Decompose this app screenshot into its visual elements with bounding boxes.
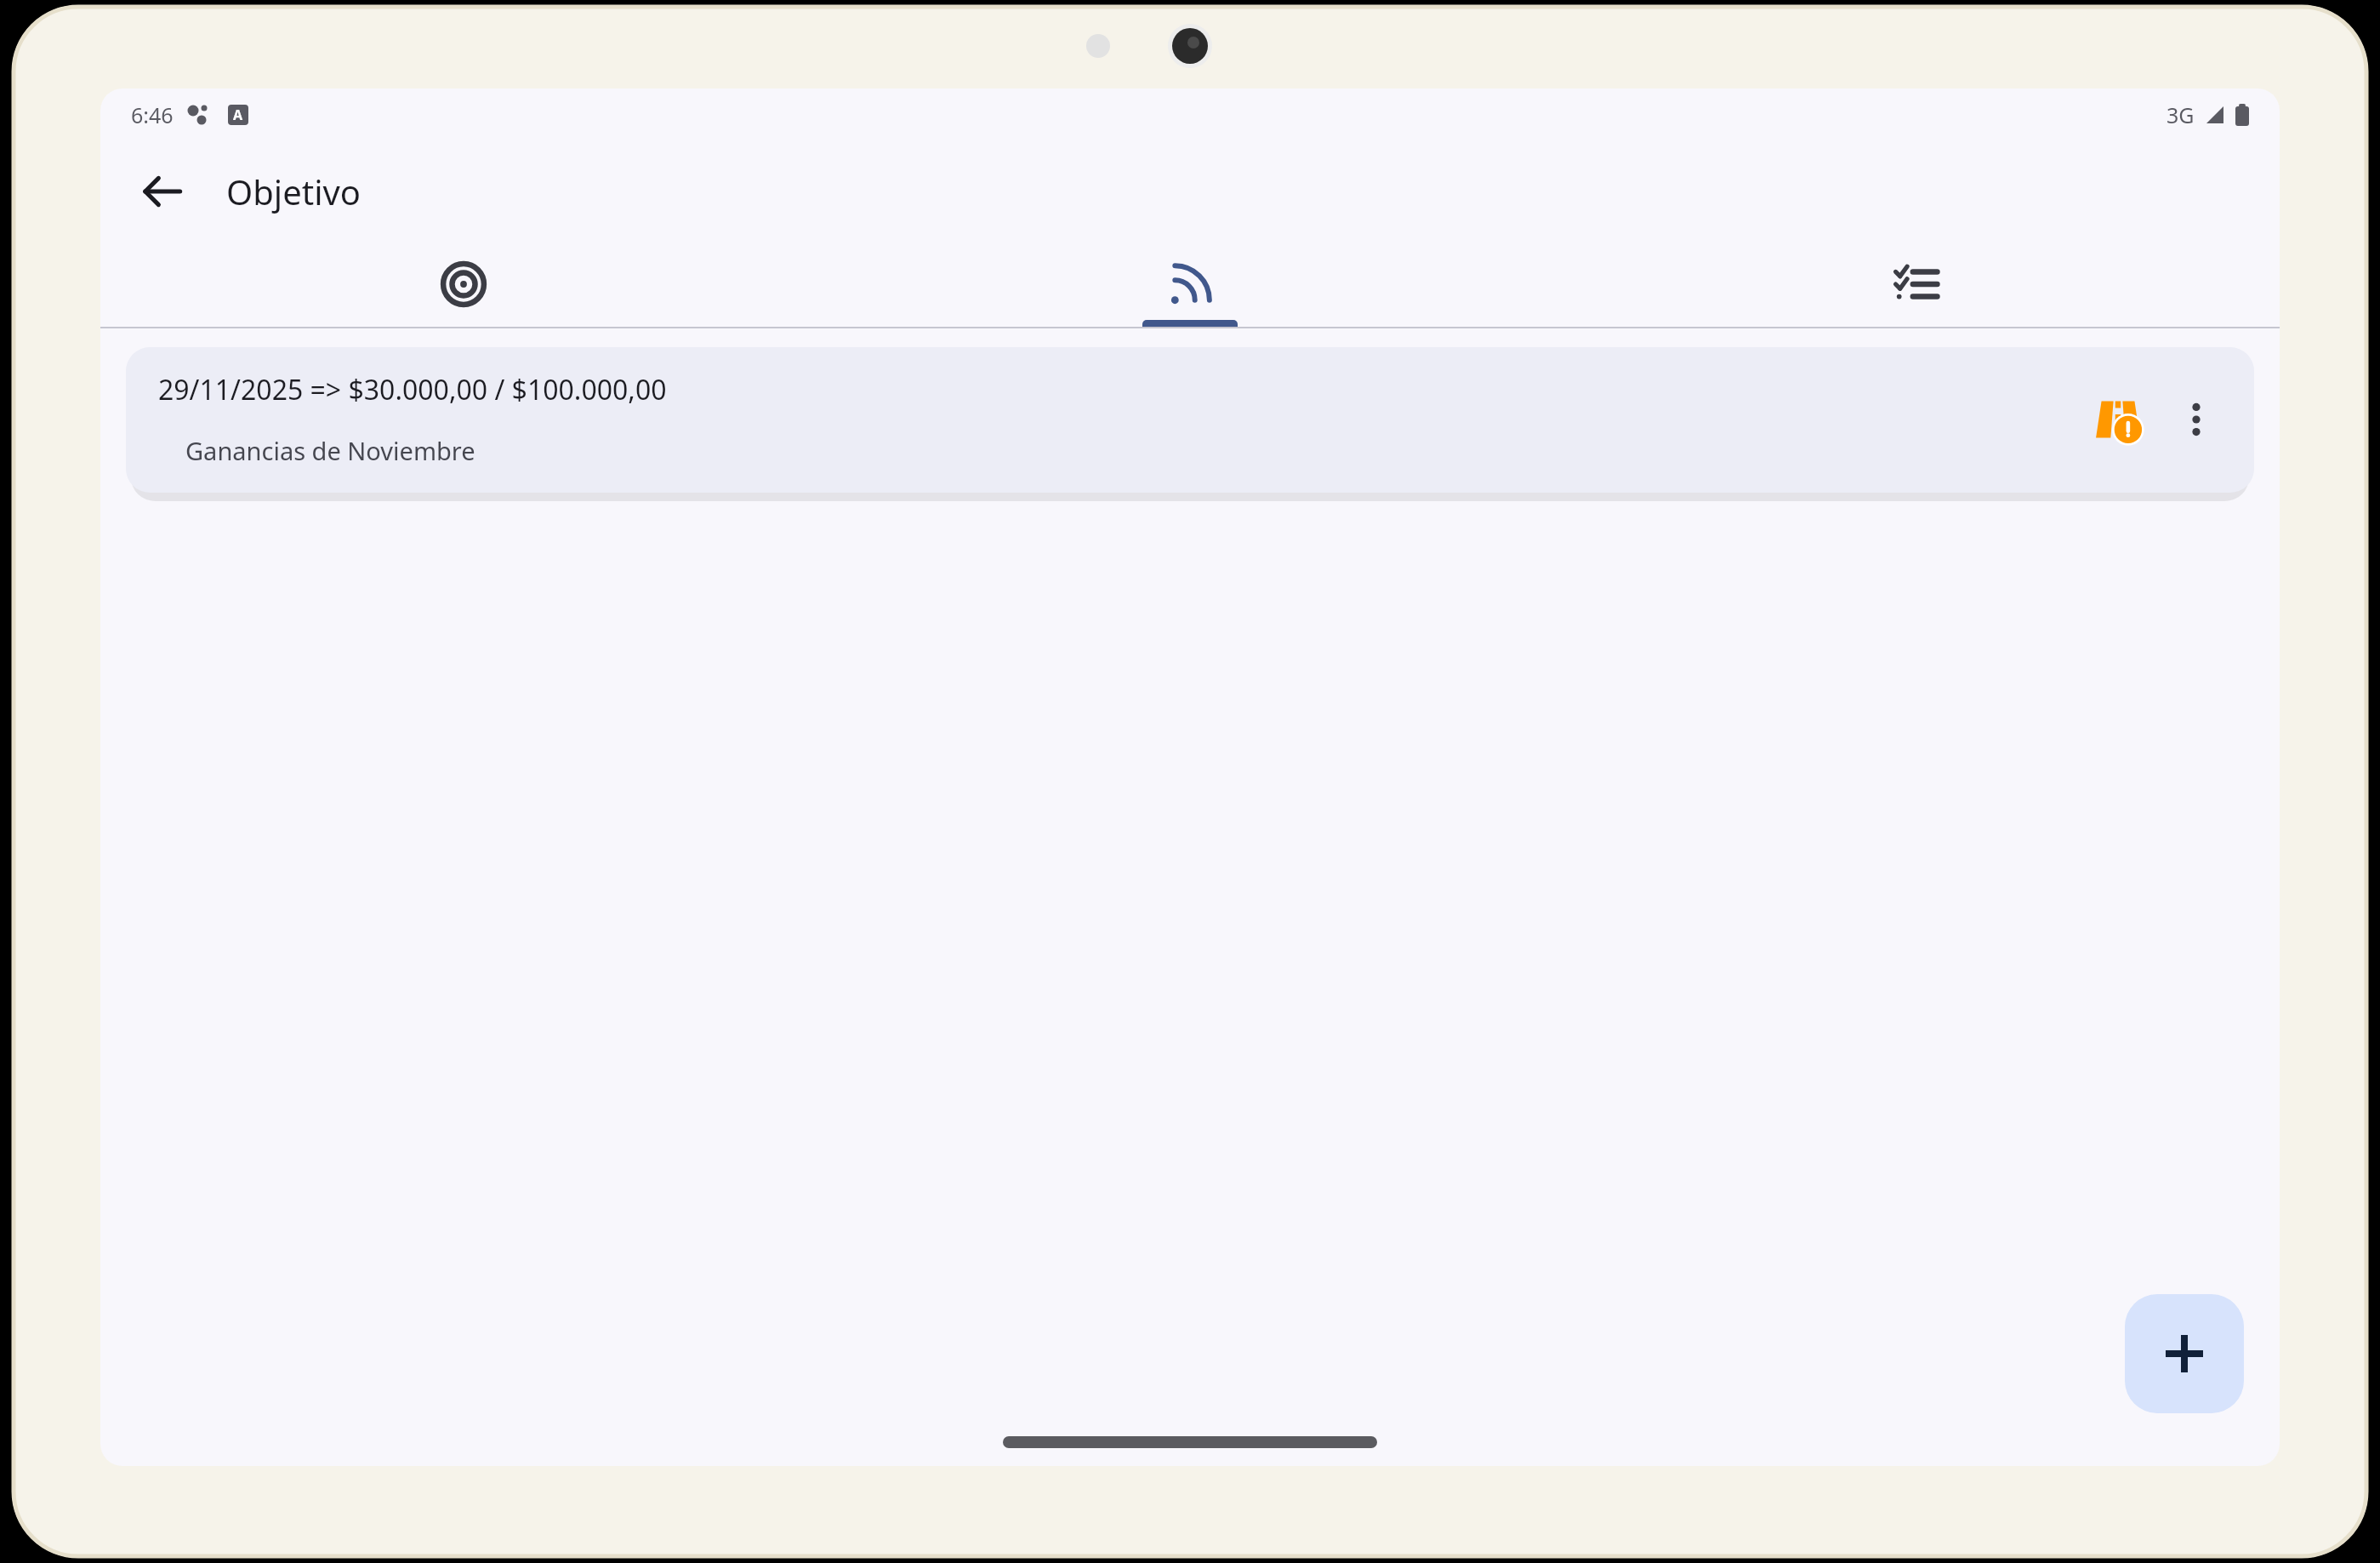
staticText: 6:46 bbox=[131, 100, 174, 129]
button[interactable]: Back bbox=[124, 153, 201, 230]
staticText: Ganancias de Noviembre bbox=[185, 434, 475, 467]
button[interactable]: Goals bbox=[100, 242, 827, 327]
button[interactable]: Feed bbox=[827, 242, 1553, 327]
button[interactable]: 29/11/2025 => $30.000,00 / $100.000,00 bbox=[126, 347, 2254, 493]
button[interactable]: Checklist bbox=[1553, 242, 2280, 327]
staticText: A bbox=[233, 106, 243, 124]
button[interactable]: Route warning bbox=[2084, 385, 2152, 453]
staticText: 29/11/2025 => $30.000,00 / $100.000,00 bbox=[158, 371, 667, 408]
button[interactable]: Add goal bbox=[2125, 1294, 2244, 1413]
button[interactable]: More options bbox=[2164, 387, 2229, 452]
staticText: Objetivo bbox=[226, 168, 361, 214]
staticText: 3G bbox=[2166, 100, 2195, 129]
